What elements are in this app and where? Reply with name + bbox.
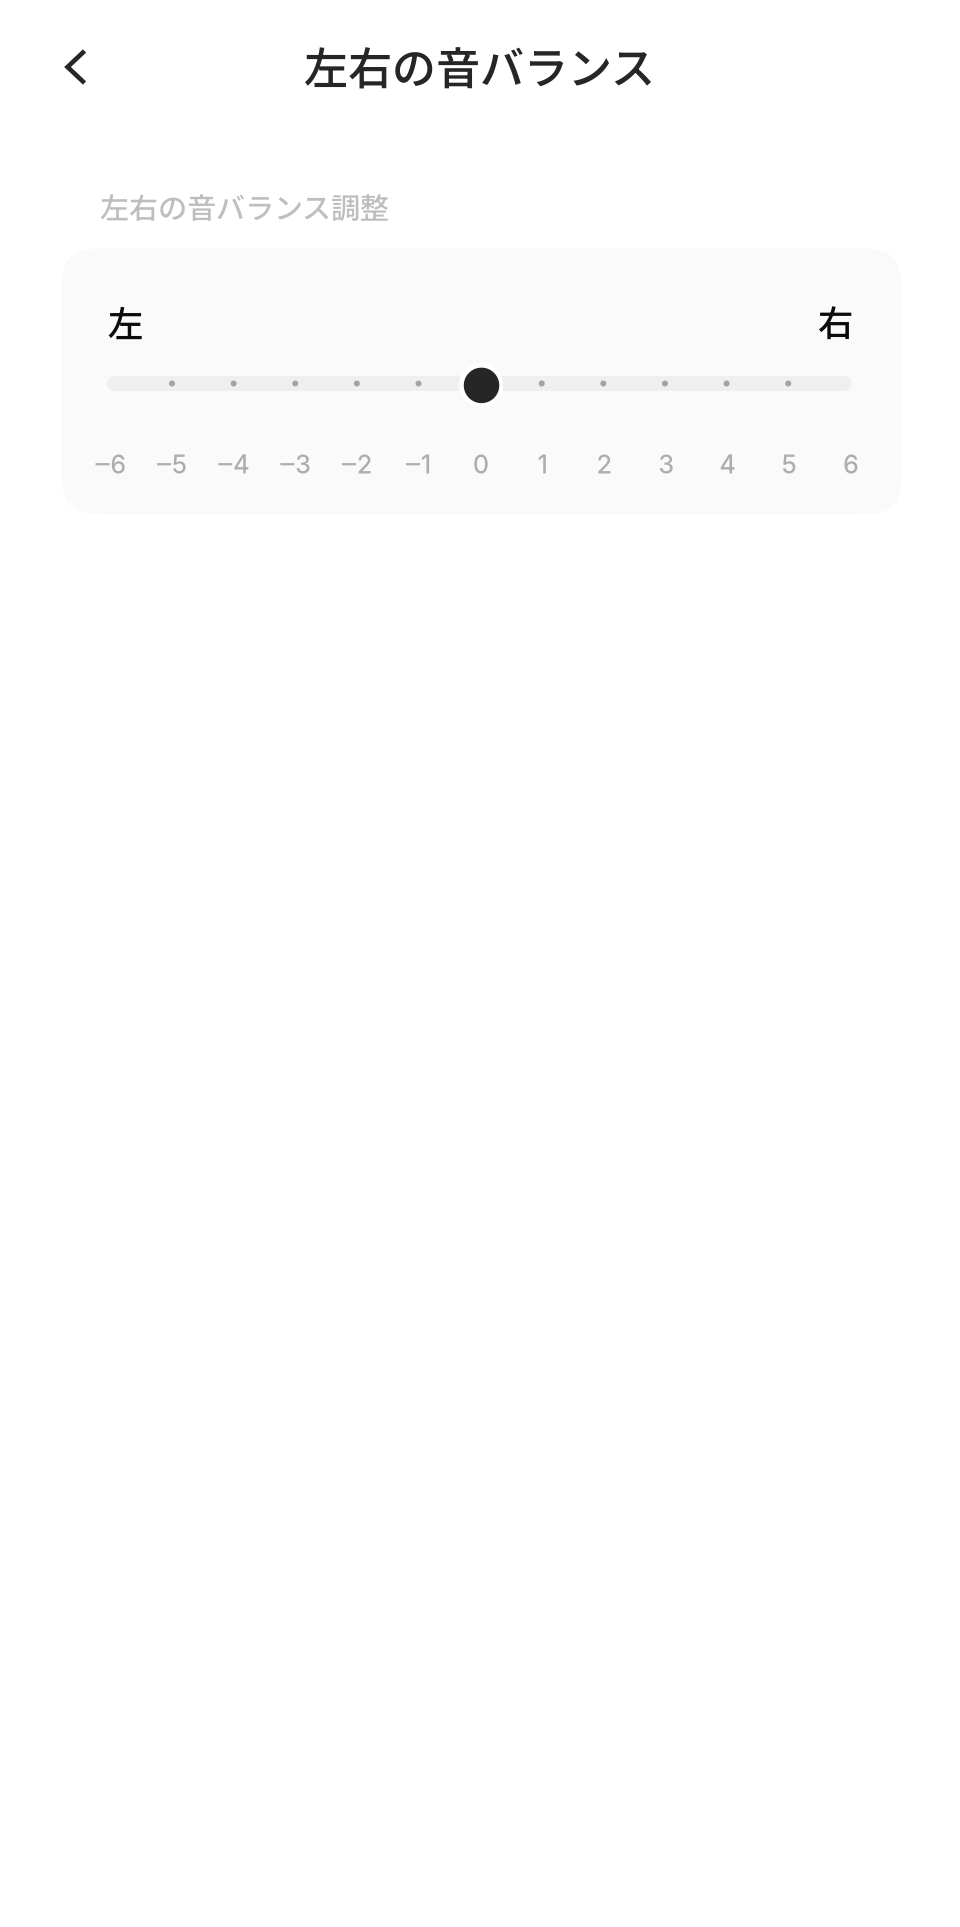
staticText: 左右の音バランス <box>304 33 655 97</box>
staticText: 左 <box>108 296 144 347</box>
staticText: ‒4 <box>217 449 249 480</box>
staticText: 1 <box>538 449 548 480</box>
staticText: ‒3 <box>279 449 310 480</box>
button[interactable]: 戻る <box>28 19 124 115</box>
staticText: 0 <box>473 449 489 480</box>
staticText: 右 <box>818 295 854 346</box>
staticText: ‒6 <box>94 449 125 480</box>
staticText: ‒1 <box>405 449 431 480</box>
staticText: 2 <box>597 449 612 480</box>
staticText: 4 <box>720 449 736 480</box>
staticText: 左右の音バランス調整 <box>100 185 389 227</box>
staticText: 6 <box>843 449 858 480</box>
staticText: ‒5 <box>156 449 187 480</box>
staticText: ‒2 <box>341 449 372 480</box>
staticText: 3 <box>658 449 673 480</box>
staticText: 5 <box>782 449 797 480</box>
